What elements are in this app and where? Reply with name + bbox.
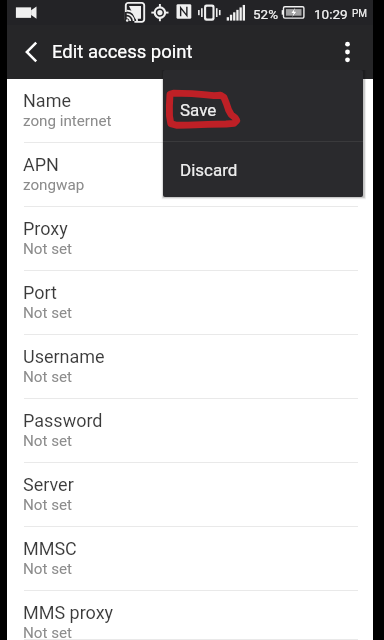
staticText: Not set bbox=[23, 432, 73, 450]
staticText: Not set bbox=[23, 368, 73, 386]
button[interactable]: Server bbox=[7, 463, 373, 527]
staticText: PM bbox=[352, 8, 368, 20]
staticText: zongwap bbox=[23, 176, 85, 194]
staticText: Discard bbox=[180, 160, 238, 180]
staticText: 10:29 bbox=[314, 6, 348, 22]
staticText: zong internet bbox=[23, 112, 112, 130]
button[interactable]: Password bbox=[7, 399, 373, 463]
staticText: Not set bbox=[23, 560, 73, 578]
button[interactable]: MMS proxy bbox=[7, 591, 373, 640]
button[interactable]: MMSC bbox=[7, 527, 373, 591]
staticText: MMS proxy bbox=[23, 602, 114, 623]
staticText: Not set bbox=[23, 624, 73, 640]
staticText: Not set bbox=[23, 304, 73, 322]
staticText: Password bbox=[23, 410, 103, 431]
button[interactable]: More options bbox=[327, 29, 373, 75]
staticText: Edit access point bbox=[52, 41, 193, 63]
button[interactable]: Port bbox=[7, 271, 373, 335]
button[interactable]: Save bbox=[163, 70, 363, 141]
staticText: Port bbox=[23, 282, 57, 303]
staticText: Username bbox=[23, 346, 105, 367]
staticText: Not set bbox=[23, 496, 73, 514]
button[interactable]: Username bbox=[7, 335, 373, 399]
button[interactable]: Proxy bbox=[7, 207, 373, 271]
staticText: APN bbox=[23, 154, 59, 175]
staticText: 52% bbox=[253, 6, 279, 22]
staticText: Save bbox=[180, 100, 217, 120]
button[interactable]: APN bbox=[7, 143, 373, 207]
button[interactable]: Discard bbox=[163, 142, 363, 197]
staticText: Not set bbox=[23, 240, 73, 258]
staticText: Server bbox=[23, 474, 74, 495]
staticText: Name bbox=[23, 90, 71, 111]
button[interactable]: Navigate up bbox=[9, 30, 53, 74]
staticText: MMSC bbox=[23, 538, 77, 559]
staticText: Proxy bbox=[23, 218, 68, 239]
button[interactable]: Name bbox=[7, 79, 373, 143]
